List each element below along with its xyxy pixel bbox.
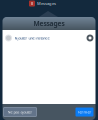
button[interactable]: Ajouter une instance bbox=[2, 30, 95, 46]
staticText: Ajouter une instance bbox=[14, 35, 49, 41]
staticText: Messages bbox=[37, 1, 56, 6]
staticText: Ne pas ajouter bbox=[7, 109, 32, 115]
button[interactable]: Ne pas ajouter bbox=[3, 107, 36, 116]
button[interactable]: Fermer bbox=[75, 107, 93, 116]
staticText: Messages bbox=[33, 19, 64, 28]
staticText: Fermer bbox=[77, 109, 91, 115]
